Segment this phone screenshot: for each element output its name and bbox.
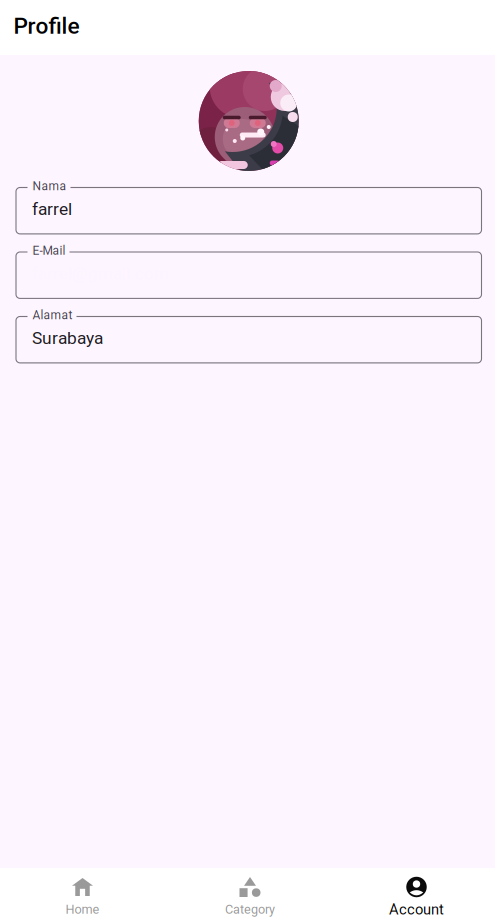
staticText: Account <box>389 901 444 918</box>
staticText: Nama <box>32 179 66 193</box>
button[interactable]: Category <box>165 868 334 921</box>
staticText: Home <box>65 902 99 917</box>
button[interactable]: Alamat <box>15 316 482 363</box>
staticText: Profile <box>13 13 79 39</box>
staticText: Surabaya <box>32 328 103 348</box>
staticText: Alamat <box>32 308 72 322</box>
button[interactable]: Nama <box>15 187 482 234</box>
button[interactable]: Account <box>334 868 495 921</box>
button[interactable]: E-Mail <box>15 251 482 299</box>
staticText: farrel <box>32 199 72 219</box>
staticText: E-Mail <box>32 243 65 258</box>
staticText: Category <box>225 902 275 917</box>
button[interactable]: Home <box>0 868 165 921</box>
